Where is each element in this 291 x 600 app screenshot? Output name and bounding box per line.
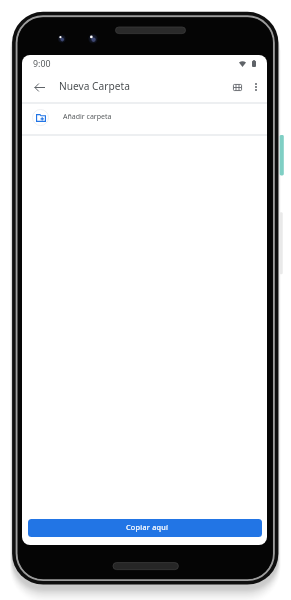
button[interactable]: Copiar aquí — [28, 519, 262, 537]
staticText: Copiar aquí — [126, 522, 169, 532]
button[interactable]: Añadir carpeta — [22, 104, 267, 134]
staticText: Añadir carpeta — [63, 112, 112, 122]
staticText: Nueva Carpeta — [59, 79, 130, 93]
button[interactable]: More options — [246, 77, 266, 97]
button[interactable]: Back — [27, 75, 51, 99]
staticText: 9:00 — [33, 58, 51, 70]
button[interactable]: Grid view — [228, 78, 246, 96]
